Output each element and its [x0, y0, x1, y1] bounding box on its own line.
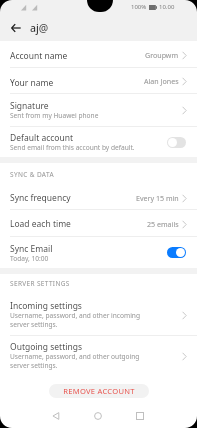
button[interactable]: Outgoing settings	[0, 336, 197, 377]
staticText: Default account	[10, 132, 74, 144]
staticText: Signature	[10, 100, 49, 112]
staticText: REMOVE ACCOUNT	[63, 386, 135, 396]
staticText: Sync Email	[10, 243, 53, 255]
staticText: SERVER SETTINGS	[10, 279, 70, 288]
button[interactable]: Back	[0, 14, 30, 41]
button[interactable]: Incoming settings	[0, 295, 197, 336]
button[interactable]: Sync frequency	[0, 185, 197, 210]
button[interactable]: Recent apps	[131, 407, 149, 425]
staticText: Outgoing settings	[10, 341, 82, 353]
staticText: 25 emails	[147, 219, 179, 229]
staticText: Groupwm	[145, 50, 179, 60]
staticText: Every 15 min	[136, 193, 179, 203]
staticText: Your name	[10, 77, 54, 89]
staticText: Username, password, and other incoming s…	[10, 311, 145, 329]
button[interactable]: Account name	[0, 41, 197, 68]
staticText: aj@	[30, 21, 49, 35]
button[interactable]: Home	[89, 407, 107, 425]
staticText: Username, password, and other outgoing s…	[10, 352, 145, 370]
button[interactable]: Your name	[0, 68, 197, 94]
staticText: Sync frequency	[10, 192, 71, 204]
staticText: Send email from this account by default.	[10, 143, 135, 152]
button[interactable]: Sync Email	[0, 237, 197, 268]
staticText: Incoming settings	[10, 300, 82, 312]
button[interactable]: Default account	[0, 127, 197, 157]
button[interactable]: Back	[47, 407, 65, 425]
staticText: Alan Jones	[144, 76, 179, 86]
staticText: Sent from my Huawei phone	[10, 111, 99, 120]
staticText: 10.00	[159, 3, 175, 11]
button[interactable]: Load each time	[0, 210, 197, 237]
staticText: SYNC & DATA	[10, 170, 54, 179]
staticText: Load each time	[10, 218, 71, 230]
staticText: 100%	[131, 3, 147, 11]
button[interactable]: REMOVE ACCOUNT	[49, 384, 149, 398]
staticText: Account name	[10, 50, 68, 62]
staticText: Today, 10:00	[10, 254, 49, 263]
button[interactable]: Signature	[0, 94, 197, 127]
